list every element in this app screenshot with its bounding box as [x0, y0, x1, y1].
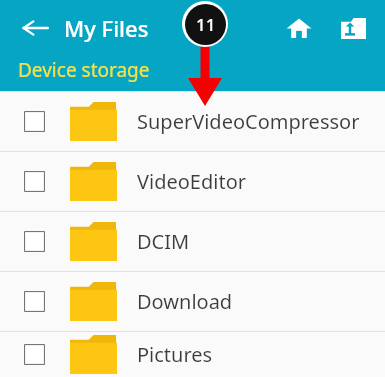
staticText: My Files — [64, 13, 149, 43]
staticText: 11 — [196, 13, 216, 36]
staticText: VideoEditor — [137, 168, 246, 195]
button[interactable]: Select Pictures — [24, 344, 45, 365]
button[interactable]: Home — [279, 8, 319, 48]
staticText: SuperVideoCompressor — [137, 108, 360, 135]
button[interactable]: Back — [18, 11, 52, 45]
button[interactable]: Select Download — [24, 291, 45, 312]
button[interactable]: Select SuperVideoCompressor — [0, 92, 385, 151]
button[interactable]: Select SuperVideoCompressor — [24, 111, 45, 132]
button[interactable]: Select Download — [0, 272, 385, 331]
button[interactable]: Select VideoEditor — [0, 152, 385, 211]
button[interactable]: Device storage — [18, 57, 150, 83]
button[interactable]: Select VideoEditor — [24, 171, 45, 192]
button[interactable]: Select Pictures — [0, 332, 385, 377]
staticText: DCIM — [137, 228, 190, 255]
staticText: Pictures — [137, 341, 213, 368]
button[interactable]: Select DCIM — [0, 212, 385, 271]
button[interactable]: Select DCIM — [24, 231, 45, 252]
button[interactable]: Up one level — [333, 8, 373, 48]
staticText: Download — [137, 288, 233, 315]
